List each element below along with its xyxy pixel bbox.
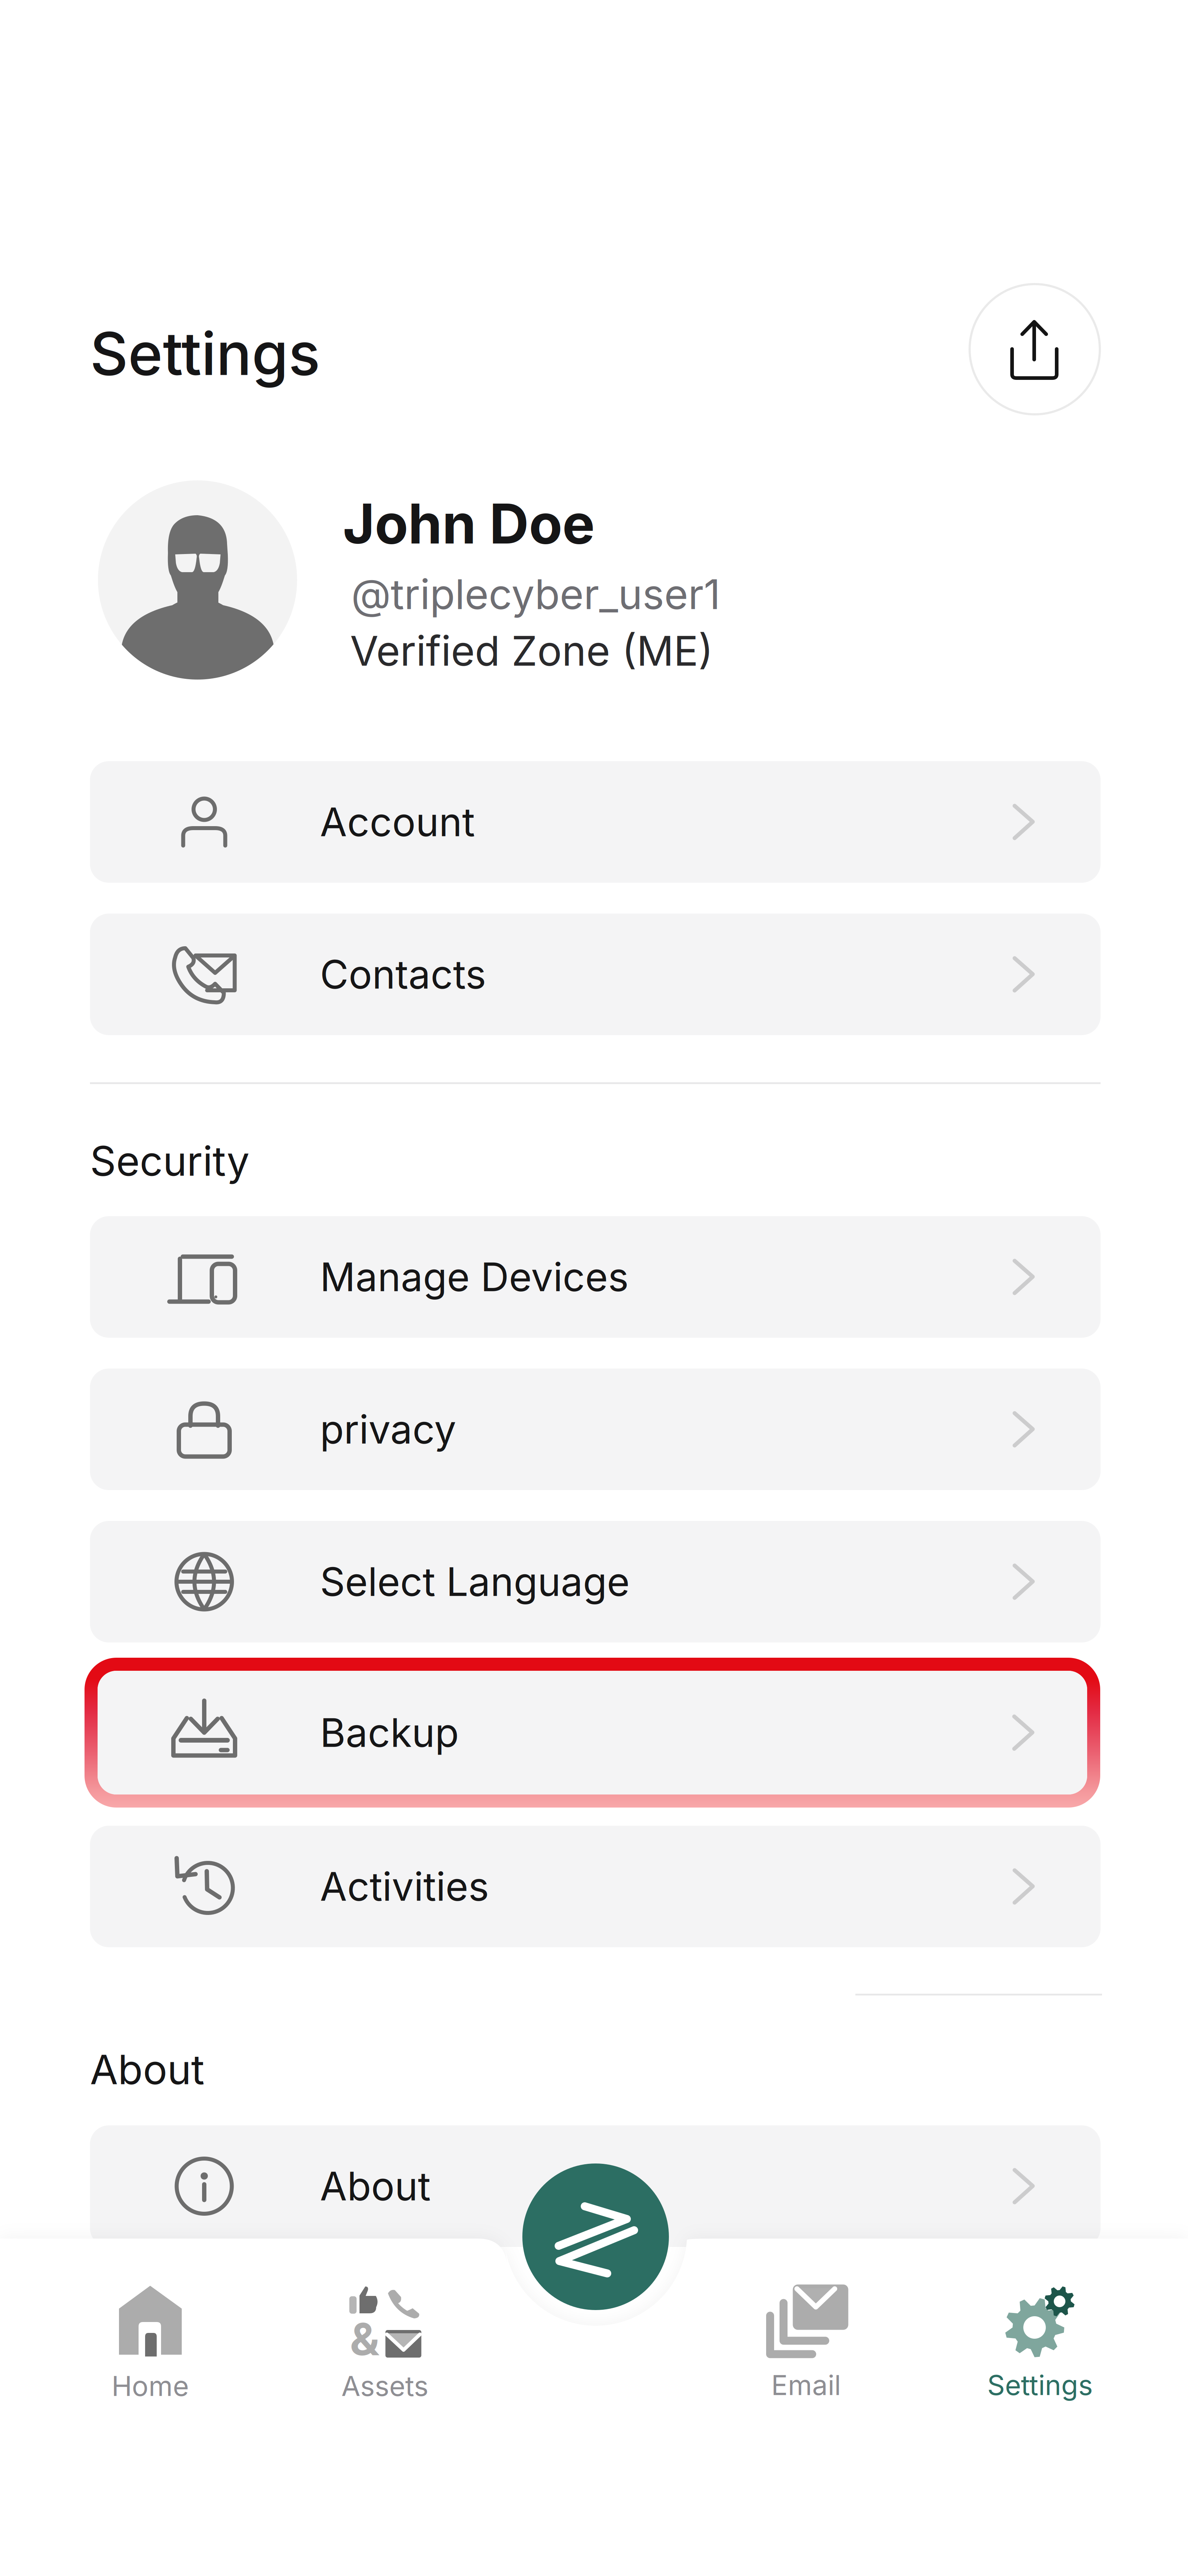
staticText: Email [771, 2368, 841, 2402]
button[interactable]: Share [969, 283, 1101, 415]
staticText: John Doe [343, 491, 595, 557]
staticText: About [90, 2045, 205, 2094]
button[interactable]: Email [704, 2283, 908, 2402]
button[interactable]: About [90, 2125, 1101, 2247]
button[interactable]: privacy [90, 1369, 1101, 1490]
staticText: privacy [320, 1406, 456, 1453]
button[interactable]: Select Language [90, 1521, 1101, 1642]
button[interactable]: Contacts [90, 914, 1101, 1035]
staticText: @triplecyber_user1 [351, 569, 720, 619]
button[interactable]: New message [522, 2163, 669, 2310]
staticText: Verified Zone (ME) [350, 626, 713, 676]
staticText: Manage Devices [320, 1253, 629, 1301]
staticText: Select Language [320, 1558, 630, 1605]
staticText: Settings [987, 2368, 1093, 2402]
staticText: Home [112, 2369, 189, 2403]
staticText: Backup [320, 1709, 459, 1756]
button[interactable]: Settings [938, 2283, 1142, 2402]
staticText: Settings [90, 318, 320, 389]
staticText: Activities [320, 1863, 489, 1910]
staticText: & [350, 2312, 379, 2366]
staticText: Contacts [320, 951, 486, 998]
button[interactable]: Home [49, 2282, 252, 2403]
button[interactable]: Activities [90, 1826, 1101, 1947]
staticText: Security [90, 1136, 250, 1186]
staticText: Account [320, 798, 475, 846]
staticText: Assets [341, 2369, 428, 2403]
button[interactable]: Manage Devices [90, 1216, 1101, 1338]
button[interactable]: & [283, 2282, 486, 2403]
button[interactable]: Account [90, 761, 1101, 883]
staticText: About [320, 2162, 431, 2210]
button[interactable]: Backup [98, 1671, 1087, 1794]
